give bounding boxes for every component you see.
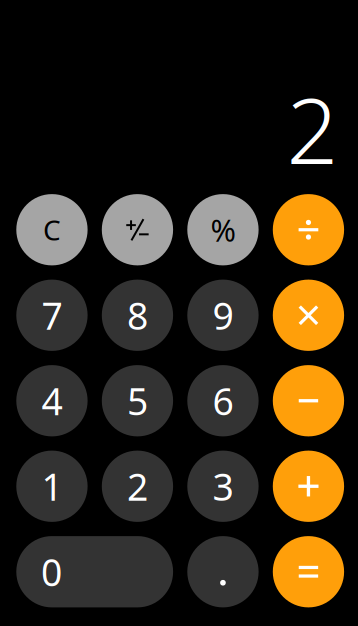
button[interactable]: Equals: [273, 536, 344, 607]
button[interactable]: 2: [102, 451, 173, 522]
button[interactable]: Decimal point: [187, 536, 259, 607]
staticText: 0: [41, 547, 62, 597]
button[interactable]: 1: [16, 451, 88, 522]
staticText: 5: [127, 376, 148, 426]
staticText: %: [210, 209, 235, 250]
button[interactable]: %: [187, 194, 259, 265]
button[interactable]: Plus Minus: [102, 194, 173, 265]
staticText: 2: [127, 461, 148, 511]
staticText: 3: [212, 461, 233, 511]
button[interactable]: 5: [102, 365, 173, 436]
button[interactable]: 8: [102, 280, 173, 351]
button[interactable]: 7: [16, 280, 88, 351]
staticText: 9: [212, 290, 233, 340]
button[interactable]: Divide: [273, 194, 344, 265]
button[interactable]: 9: [187, 280, 259, 351]
staticText: 6: [212, 376, 233, 426]
staticText: 8: [127, 290, 148, 340]
button[interactable]: 0: [16, 536, 173, 607]
staticText: 4: [41, 376, 62, 426]
button[interactable]: Multiply: [273, 280, 344, 351]
staticText: 2: [286, 69, 338, 189]
button[interactable]: 4: [16, 365, 88, 436]
staticText: 1: [41, 461, 62, 511]
staticText: C: [43, 211, 61, 248]
button[interactable]: Subtract: [273, 365, 344, 436]
button[interactable]: C: [16, 194, 88, 265]
staticText: 7: [41, 290, 62, 340]
button[interactable]: 6: [187, 365, 259, 436]
button[interactable]: Add: [273, 451, 344, 522]
button[interactable]: 3: [187, 451, 259, 522]
